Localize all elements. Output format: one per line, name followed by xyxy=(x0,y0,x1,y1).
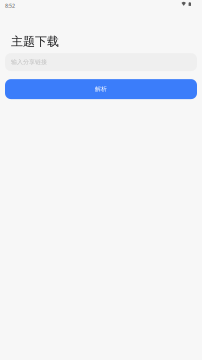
staticText: 解析 xyxy=(95,85,107,93)
button[interactable]: 解析 xyxy=(5,79,197,99)
staticText: 8:52 xyxy=(5,2,15,9)
button[interactable]: 输入分享链接 xyxy=(5,53,197,71)
staticText: 主题下载 xyxy=(11,34,59,49)
staticText: 输入分享链接 xyxy=(11,58,47,66)
